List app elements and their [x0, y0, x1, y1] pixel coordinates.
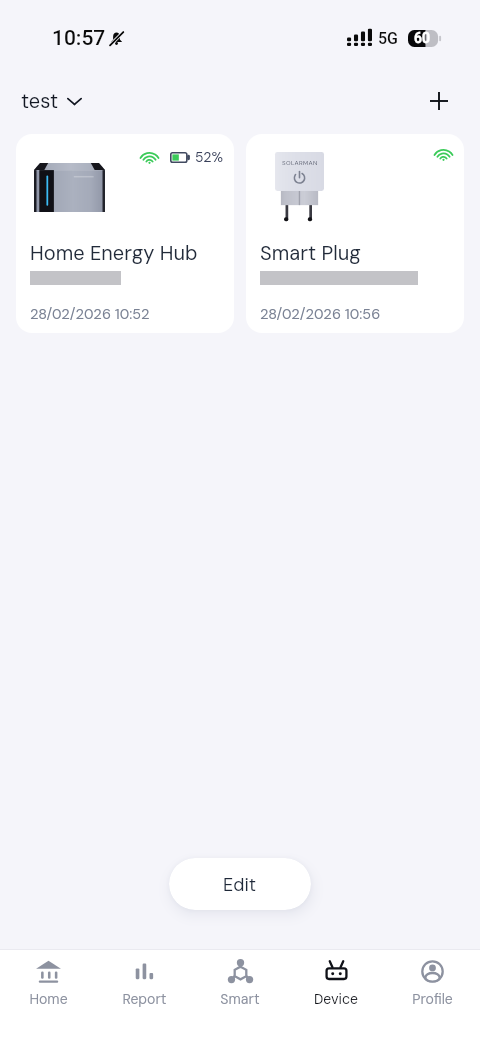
button[interactable]: Profile	[384, 950, 480, 1044]
staticText: Device	[314, 990, 358, 1008]
staticText: Smart Plug	[260, 240, 361, 266]
staticText: 52%	[195, 148, 224, 166]
button[interactable]: test	[21, 88, 82, 114]
staticText: Report	[122, 990, 167, 1008]
staticText: test	[21, 88, 59, 114]
button[interactable]: Edit	[169, 858, 311, 910]
staticText: SOLARMAN	[282, 159, 318, 167]
button[interactable]: Device	[288, 950, 384, 1044]
button[interactable]: Report	[96, 950, 192, 1044]
staticText: 28/02/2026 10:56	[260, 305, 381, 324]
staticText: Profile	[412, 990, 453, 1008]
button[interactable]: 52%	[16, 134, 234, 333]
staticText: 28/02/2026 10:52	[30, 305, 150, 324]
button[interactable]: Smart	[192, 950, 288, 1044]
button[interactable]: Home	[0, 950, 96, 1044]
staticText: Edit	[223, 873, 257, 896]
staticText: 60	[414, 30, 430, 46]
staticText: Home	[29, 990, 68, 1008]
staticText: 10:57	[52, 26, 106, 51]
staticText: 5G	[378, 29, 398, 48]
staticText: Smart	[220, 990, 260, 1008]
button[interactable]: SOLARMAN	[246, 134, 464, 333]
button[interactable]: Add device	[421, 83, 457, 119]
staticText: Home Energy Hub	[30, 240, 198, 266]
